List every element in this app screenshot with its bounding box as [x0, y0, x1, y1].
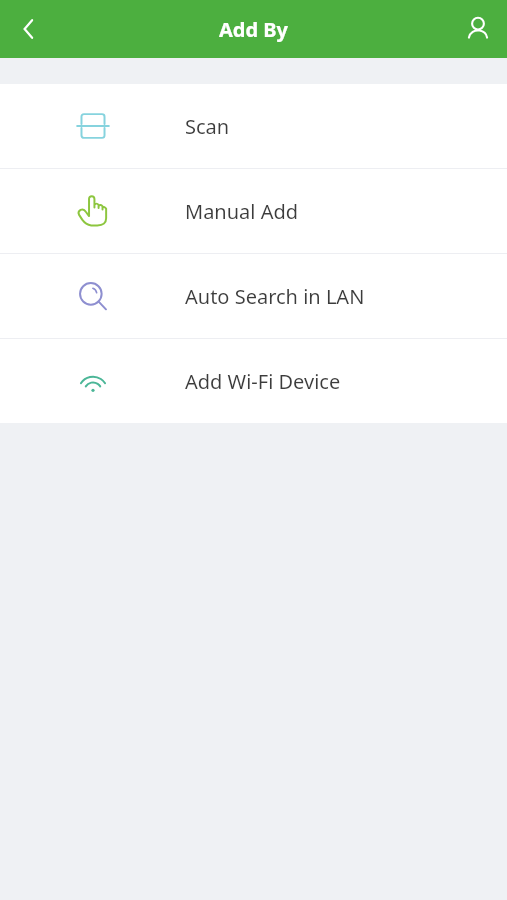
staticText: Manual Add	[185, 198, 299, 225]
button[interactable]: Back	[0, 0, 58, 58]
staticText: Auto Search in LAN	[185, 283, 365, 310]
staticText: Add By	[219, 16, 289, 43]
staticText: Add Wi-Fi Device	[185, 368, 341, 395]
button[interactable]: Add Wi-Fi Device	[0, 339, 507, 423]
button[interactable]: Auto Search in LAN	[0, 254, 507, 338]
button[interactable]: Scan	[0, 84, 507, 168]
button[interactable]: Account	[449, 0, 507, 58]
staticText: Scan	[185, 113, 230, 140]
button[interactable]: Manual Add	[0, 169, 507, 253]
